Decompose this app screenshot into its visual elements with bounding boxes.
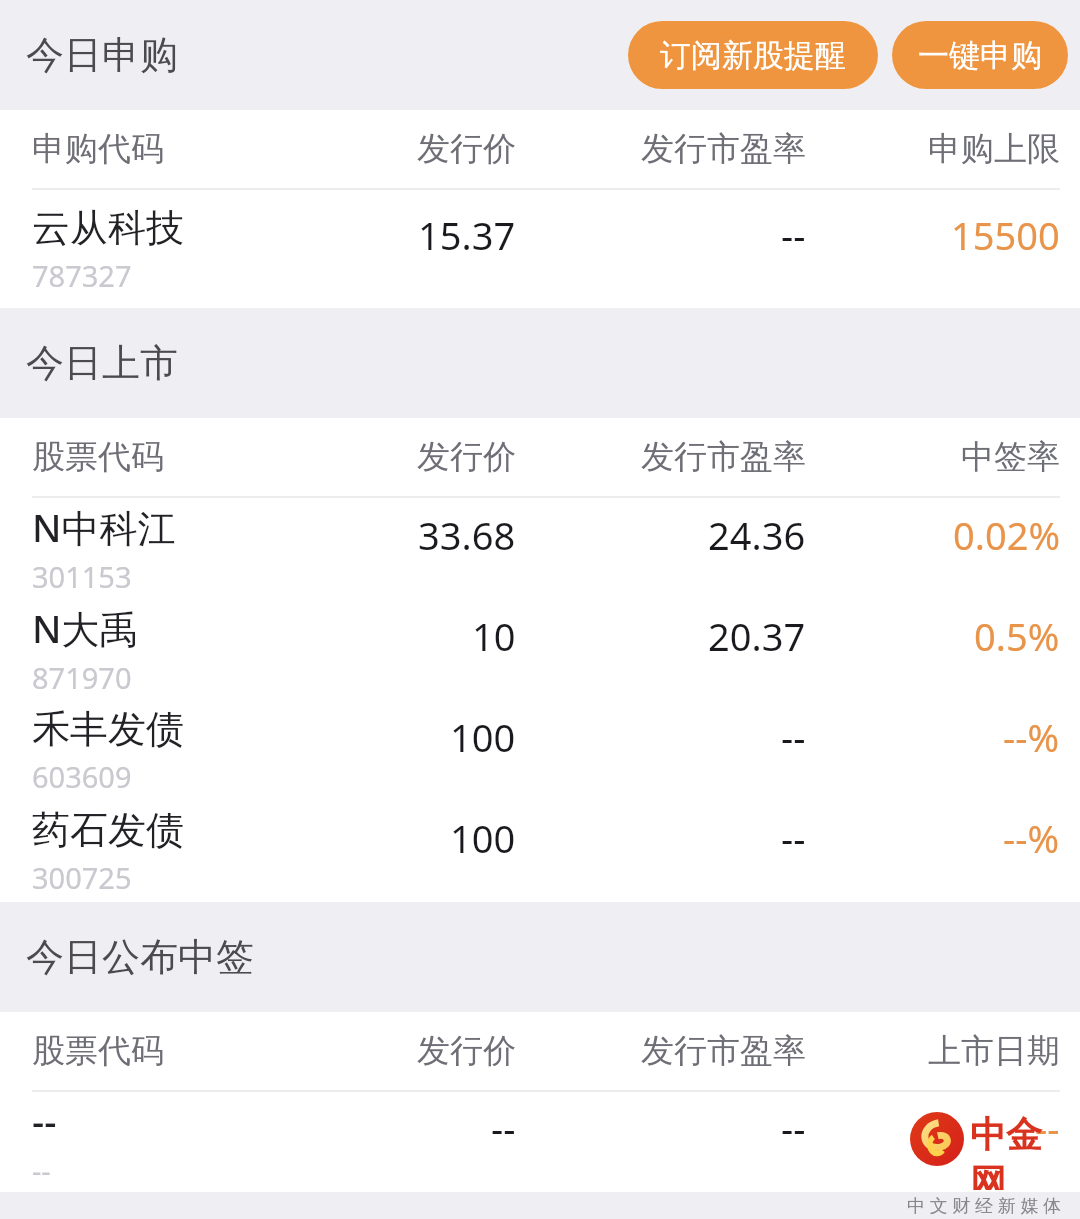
staticText: -- [491,1102,516,1154]
staticText: 10 [472,610,516,662]
staticText: 一键申购 [918,36,1042,75]
staticText: -- [32,1151,51,1190]
staticText: 云从科技 [32,204,184,252]
staticText: 15.37 [418,209,516,261]
button[interactable]: N大禹 [0,599,1080,700]
staticText: 15500 [951,209,1060,261]
staticText: 发行市盈率 [641,128,806,170]
staticText: --% [1003,812,1060,864]
staticText: 今日上市 [26,339,178,387]
staticText: 上市日期 [928,1030,1060,1072]
staticText: 今日公布中签 [26,933,254,981]
button[interactable]: -- [0,1092,1080,1192]
button[interactable]: N中科江 [0,498,1080,599]
staticText: 发行市盈率 [641,1030,806,1072]
other: 中金网 CNGOLD watermark [910,1112,1066,1190]
staticText: 中金网 [970,1112,1066,1190]
staticText: 申购上限 [928,128,1060,170]
staticText: -- [781,711,806,763]
staticText: 股票代码 [32,436,164,478]
staticText: 订阅新股提醒 [660,36,846,75]
staticText: 申购代码 [32,128,164,170]
staticText: 禾丰发债 [32,705,184,753]
button[interactable]: 药石发债 [0,801,1080,902]
staticText: 发行价 [417,1030,516,1072]
staticText: 787327 [32,256,132,295]
staticText: 100 [450,812,516,864]
staticText: 中 文 财 经 新 媒 体 [907,1193,1062,1218]
staticText: -- [781,812,806,864]
staticText: 100 [450,711,516,763]
staticText: 24.36 [708,509,806,561]
staticText: N大禹 [32,602,138,654]
staticText: 发行市盈率 [641,436,806,478]
staticText: 股票代码 [32,1030,164,1072]
staticText: 301153 [32,557,132,596]
staticText: 0.02% [953,509,1060,561]
staticText: 871970 [32,658,132,697]
staticText: -- [32,1095,57,1147]
button[interactable]: 一键申购 [892,21,1068,89]
staticText: -- [781,209,806,261]
staticText: 300725 [32,858,132,897]
button[interactable]: 禾丰发债 [0,700,1080,801]
staticText: 今日申购 [26,31,178,79]
staticText: 20.37 [708,610,806,662]
staticText: -- [1035,1102,1060,1154]
button[interactable]: 订阅新股提醒 [628,21,878,89]
staticText: 发行价 [417,128,516,170]
staticText: 发行价 [417,436,516,478]
staticText: --% [1003,711,1060,763]
staticText: 33.68 [418,509,516,561]
staticText: 0.5% [974,610,1060,662]
button[interactable]: 云从科技 [0,190,1080,308]
staticText: 药石发债 [32,806,184,854]
staticText: 中签率 [961,436,1060,478]
staticText: -- [781,1102,806,1154]
staticText: 603609 [32,757,132,796]
staticText: N中科江 [32,501,176,553]
